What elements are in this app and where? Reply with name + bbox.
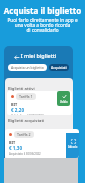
staticText: Valido [60, 100, 68, 104]
staticText: Biglietti acquistati [8, 118, 45, 124]
staticText: Tariffa 1 [19, 94, 33, 99]
staticText: Acquistati [51, 65, 67, 70]
button[interactable]: Attivalo [66, 133, 79, 158]
button[interactable]: Valido [57, 91, 70, 106]
staticText: € 2,20 [11, 107, 25, 113]
staticText: € 1,30 [9, 145, 23, 151]
button[interactable]: Acquista un biglietto [8, 64, 47, 71]
button[interactable]: Acquistati [49, 64, 69, 71]
staticText: I miei biglietti [4, 52, 73, 59]
staticText: Puoi farlo direttamente in app e una vol… [0, 17, 85, 33]
staticText: BIT [9, 140, 16, 145]
staticText: Acquistato il 30/06/2022 [9, 152, 41, 156]
button[interactable]: Indietro [12, 52, 22, 62]
staticText: Acquista un biglietto [11, 65, 44, 70]
button[interactable]: Tariffa 2 [5, 129, 79, 158]
staticText: Biglietti attivi [8, 86, 35, 92]
staticText: Tariffa 2 [17, 132, 31, 137]
staticText: Acquista il biglietto [0, 5, 85, 16]
button[interactable]: Tariffa 1 [7, 91, 72, 115]
staticText: Attivalo [68, 145, 78, 149]
staticText: Valido fino al 30/06/2022 [11, 114, 44, 115]
staticText: BIT [11, 102, 18, 107]
